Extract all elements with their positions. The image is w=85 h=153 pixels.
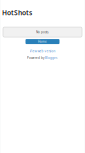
staticText: . bbox=[57, 56, 58, 60]
button[interactable]: Home bbox=[25, 39, 59, 44]
staticText: Home bbox=[38, 40, 47, 44]
button[interactable]: View web version bbox=[0, 49, 85, 53]
staticText: Blogger bbox=[45, 56, 57, 60]
staticText: HotShots bbox=[2, 8, 32, 17]
staticText: View web version bbox=[29, 49, 55, 53]
staticText: No posts. bbox=[36, 30, 49, 34]
staticText: Powered by bbox=[27, 56, 45, 60]
button[interactable]: Blogger bbox=[45, 56, 57, 60]
